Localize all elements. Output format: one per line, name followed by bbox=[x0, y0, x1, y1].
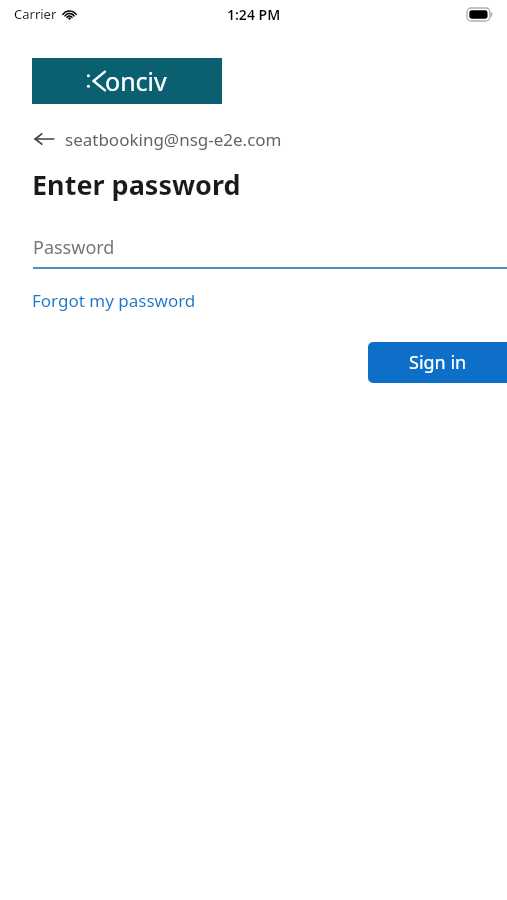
button[interactable]: onciv bbox=[32, 58, 222, 104]
staticText: 1:24 PM bbox=[227, 5, 281, 24]
staticText: seatbooking@nsg-e2e.com bbox=[65, 128, 282, 151]
button[interactable]: Sign in bbox=[368, 342, 507, 383]
staticText: Sign in bbox=[409, 350, 467, 375]
staticText: Carrier bbox=[14, 5, 57, 23]
staticText: Forgot my password bbox=[32, 289, 196, 312]
staticText: Password bbox=[33, 235, 115, 260]
other: Back bbox=[32, 127, 56, 151]
staticText: Enter password bbox=[32, 166, 241, 203]
button[interactable]: Back bbox=[32, 119, 282, 159]
button[interactable]: Password bbox=[0, 225, 507, 269]
staticText: onciv bbox=[105, 64, 167, 98]
button[interactable]: Forgot my password bbox=[32, 289, 196, 312]
